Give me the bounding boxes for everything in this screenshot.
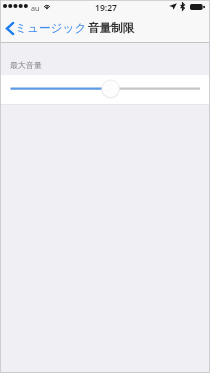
staticText: au [31,3,40,13]
other: Back to Music [6,22,14,35]
other: Wi-Fi [43,3,51,9]
other: Location services [169,3,177,10]
staticText: 音量制限 [88,21,134,35]
other: Signal strength [3,4,29,9]
button[interactable]: Maximum volume slider [0,75,210,104]
button[interactable]: 最大音量 [10,60,42,70]
staticText: 19:27 [95,2,118,14]
other: Bluetooth [180,3,185,10]
staticText: 最大音量 [10,60,42,70]
button[interactable]: Back to Music [4,17,92,39]
staticText: ミュージック [15,21,87,36]
other: Battery full [190,4,205,10]
